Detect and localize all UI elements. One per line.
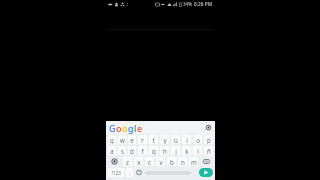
staticText: g: [128, 122, 134, 134]
button[interactable]: w: [118, 135, 126, 144]
button[interactable]: k: [182, 146, 191, 155]
button[interactable]: v: [156, 157, 165, 166]
staticText: s: [121, 147, 124, 155]
button[interactable]: d: [128, 146, 136, 155]
button[interactable]: x: [134, 157, 143, 166]
button[interactable]: h: [160, 146, 169, 155]
staticText: q: [110, 136, 114, 144]
staticText: n: [181, 158, 185, 166]
staticText: m: [191, 158, 197, 166]
staticText: c: [148, 158, 151, 166]
button[interactable]: Backspace: [200, 157, 213, 166]
staticText: d: [130, 147, 134, 155]
button[interactable]: f: [138, 146, 147, 155]
button[interactable]: r: [138, 135, 147, 144]
staticText: a: [110, 147, 114, 155]
button[interactable]: ?123: [108, 168, 124, 177]
staticText: l: [197, 147, 199, 155]
staticText: g: [152, 147, 156, 155]
staticText: 34%: [183, 1, 192, 7]
staticText: i: [186, 136, 188, 144]
button[interactable]: y: [160, 135, 169, 144]
button[interactable]: j: [171, 146, 180, 155]
staticText: k: [185, 147, 189, 155]
button[interactable]: s: [118, 146, 126, 155]
button[interactable]: Shift: [108, 157, 121, 166]
button[interactable]: ñ: [204, 146, 213, 155]
staticText: r: [141, 136, 144, 144]
staticText: ,: [129, 169, 131, 176]
staticText: w: [120, 136, 125, 144]
button[interactable]: o: [193, 135, 202, 144]
staticText: f: [141, 147, 144, 155]
button[interactable]: e: [128, 135, 136, 144]
button[interactable]: t: [149, 135, 158, 144]
staticText: j: [175, 147, 177, 155]
button[interactable]: n: [178, 157, 187, 166]
staticText: o: [196, 136, 200, 144]
staticText: v: [159, 158, 163, 166]
staticText: e: [130, 136, 134, 144]
staticText: o: [116, 122, 122, 134]
button[interactable]: b: [167, 157, 176, 166]
staticText: x: [137, 158, 141, 166]
staticText: :: [127, 1, 129, 8]
button[interactable]: a: [108, 146, 116, 155]
button[interactable]: m: [189, 157, 198, 166]
staticText: ñ: [207, 147, 211, 155]
staticText: b: [170, 158, 174, 166]
staticText: y: [163, 136, 167, 144]
button[interactable]: Emoji: [135, 168, 143, 177]
staticText: 6:26 PM: [194, 1, 213, 8]
button[interactable]: g: [149, 146, 158, 155]
staticText: e: [137, 122, 143, 134]
button[interactable]: ,: [126, 168, 133, 177]
button[interactable]: q: [108, 135, 116, 144]
button[interactable]: c: [145, 157, 154, 166]
button[interactable]: G: [109, 122, 143, 134]
staticText: l: [134, 122, 137, 134]
button[interactable]: i: [182, 135, 191, 144]
button[interactable]: u: [171, 135, 180, 144]
button[interactable]: Enter: [199, 168, 213, 177]
staticText: u: [174, 136, 178, 144]
button[interactable]: z: [123, 157, 132, 166]
staticText: p: [207, 136, 211, 144]
staticText: z: [126, 158, 129, 166]
button[interactable]: p: [204, 135, 213, 144]
button[interactable]: l: [193, 146, 202, 155]
staticText: ?123: [111, 170, 121, 176]
staticText: o: [122, 122, 128, 134]
button[interactable]: Voice input: [204, 123, 213, 132]
staticText: t: [152, 136, 155, 144]
staticText: h: [163, 147, 167, 155]
staticText: G: [109, 122, 116, 134]
